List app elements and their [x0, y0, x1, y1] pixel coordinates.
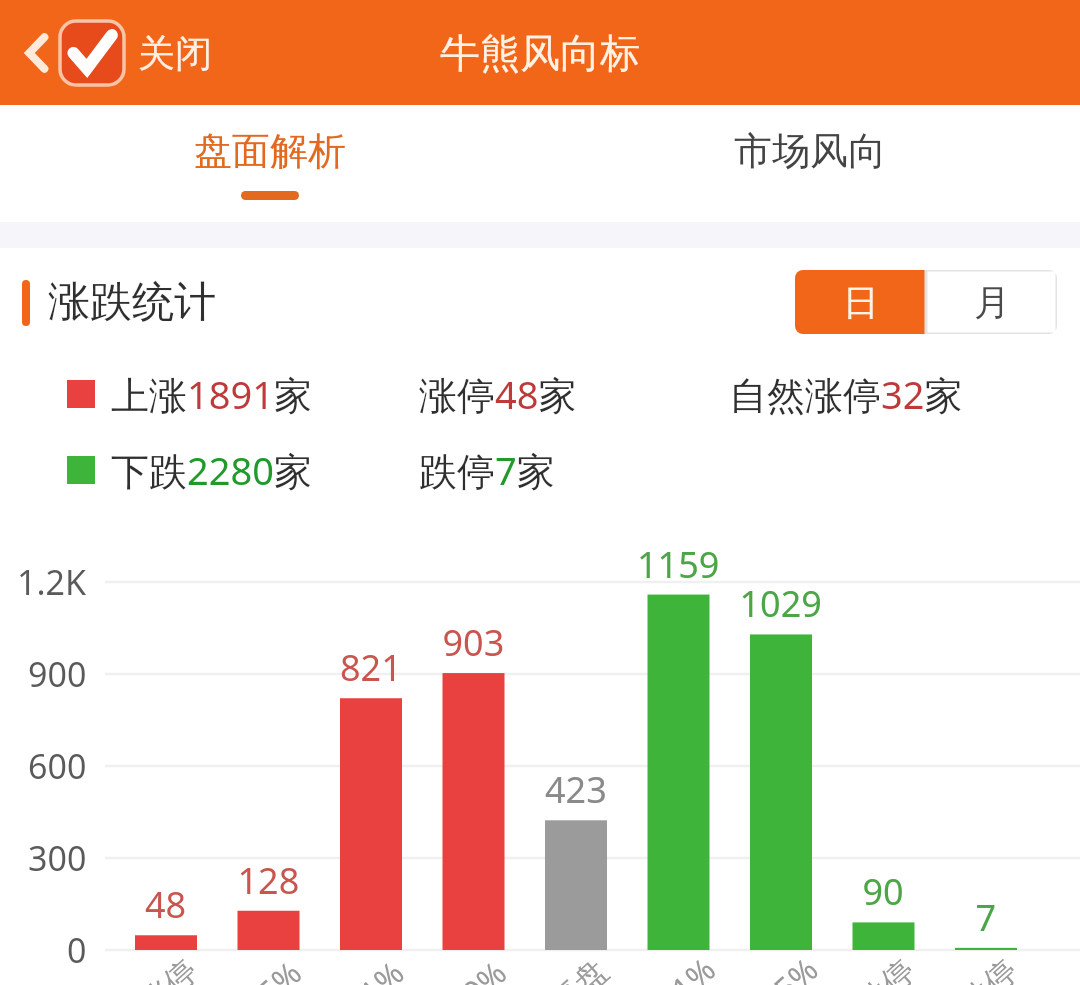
staticText: 关闭 — [138, 30, 212, 77]
button[interactable]: 市场风向 — [540, 105, 1080, 222]
staticText: 涨停48家 — [419, 368, 577, 420]
staticText: 上涨1891家 — [111, 368, 312, 420]
button[interactable]: 返回 — [16, 13, 218, 93]
staticText: 涨跌统计 — [48, 276, 216, 329]
staticText: 月 — [974, 280, 1010, 325]
staticText: 市场风向 — [734, 127, 886, 175]
other: 返回 — [22, 31, 50, 75]
button[interactable]: 盘面解析 — [0, 105, 540, 222]
staticText: 跌停7家 — [419, 444, 555, 496]
staticText: 盘面解析 — [194, 127, 346, 175]
button[interactable]: 月 — [926, 270, 1057, 334]
button[interactable]: 日 — [795, 270, 926, 334]
staticText: 自然涨停32家 — [729, 368, 963, 420]
staticText: 日 — [843, 280, 879, 325]
staticText: 牛熊风向标 — [440, 28, 640, 78]
staticText: 下跌2280家 — [111, 444, 312, 496]
